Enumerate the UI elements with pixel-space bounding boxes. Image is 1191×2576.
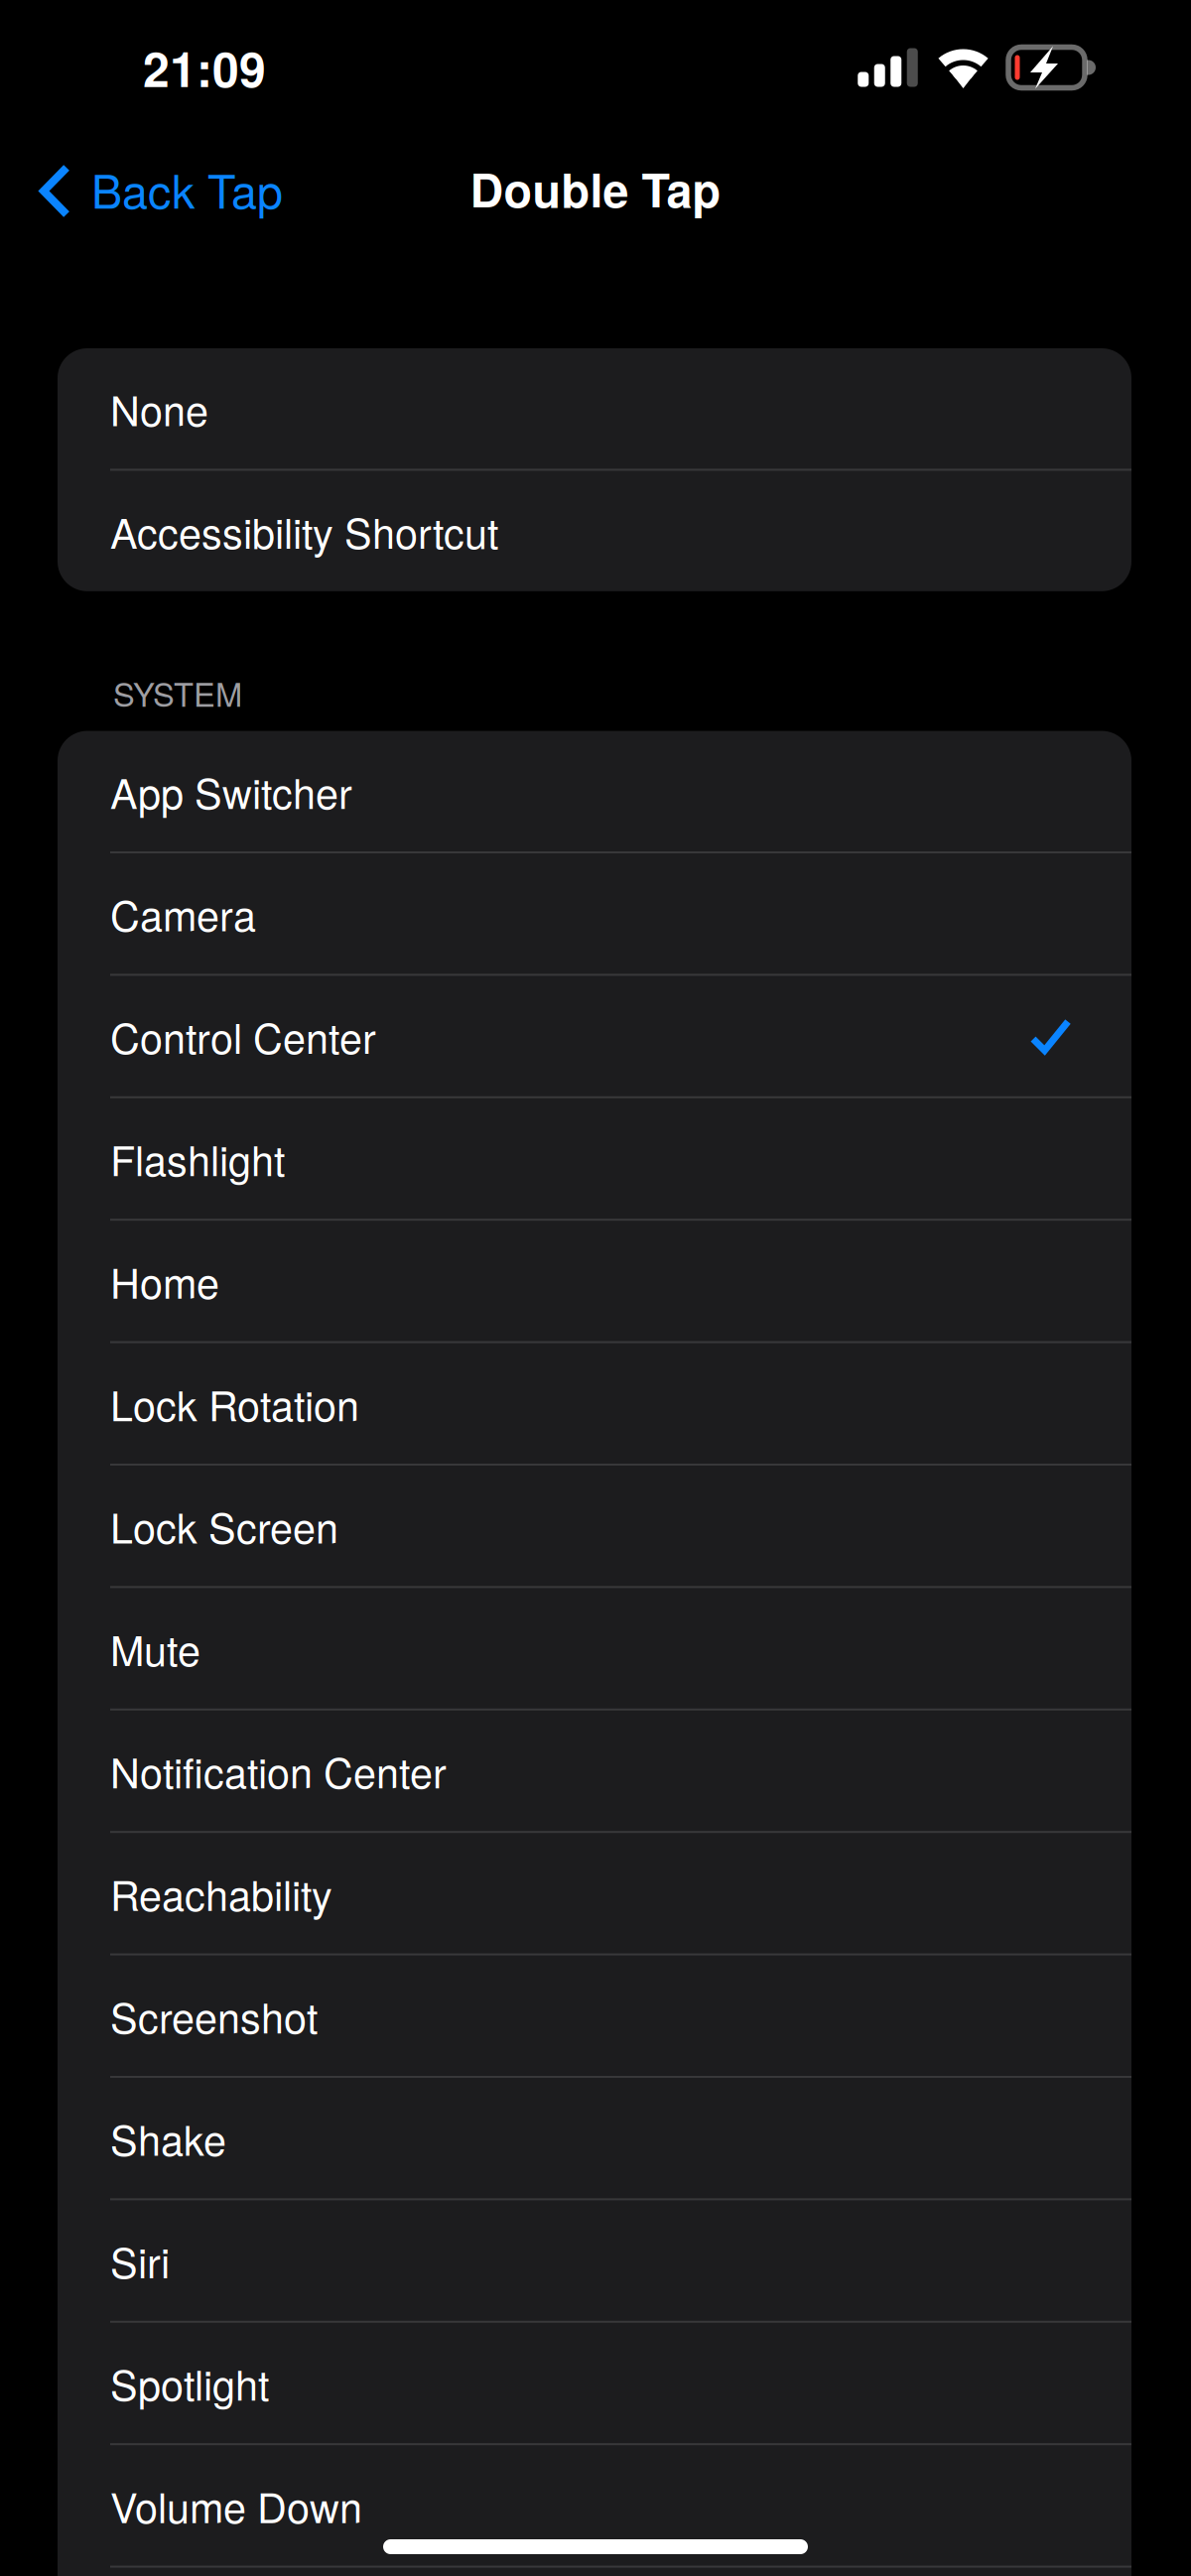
- staticText: SYSTEM: [113, 670, 242, 716]
- button[interactable]: Screenshot: [58, 1955, 1131, 2076]
- button[interactable]: Volume Up: [58, 2568, 1131, 2576]
- staticText: Shake: [110, 2109, 226, 2167]
- staticText: Double Tap: [470, 155, 721, 222]
- button[interactable]: Accessibility Shortcut: [58, 471, 1131, 591]
- staticText: Accessibility Shortcut: [110, 502, 498, 560]
- button[interactable]: Shake: [58, 2078, 1131, 2198]
- button[interactable]: Mute: [58, 1588, 1131, 1709]
- staticText: Spotlight: [110, 2354, 269, 2412]
- staticText: Siri: [110, 2231, 170, 2290]
- staticText: Screenshot: [110, 1986, 318, 2045]
- button[interactable]: Lock Screen: [58, 1466, 1131, 1586]
- button[interactable]: Camera: [58, 853, 1131, 974]
- staticText: Lock Screen: [110, 1496, 338, 1555]
- button[interactable]: Reachability: [58, 1833, 1131, 1953]
- button[interactable]: Flashlight: [58, 1098, 1131, 1219]
- button[interactable]: Control Center: [58, 976, 1131, 1096]
- staticText: Volume Down: [110, 2476, 362, 2535]
- staticText: Flashlight: [110, 1129, 285, 1188]
- button[interactable]: Spotlight: [58, 2323, 1131, 2443]
- button[interactable]: None: [58, 348, 1131, 469]
- staticText: Back Tap: [91, 155, 283, 222]
- staticText: Mute: [110, 1619, 200, 1678]
- staticText: Reachability: [110, 1864, 332, 1923]
- staticText: 21:09: [143, 33, 266, 102]
- staticText: Lock Rotation: [110, 1374, 359, 1433]
- button[interactable]: Lock Rotation: [58, 1343, 1131, 1464]
- button[interactable]: Volume Down: [58, 2445, 1131, 2566]
- staticText: None: [110, 379, 208, 438]
- staticText: App Switcher: [110, 762, 352, 821]
- staticText: Control Center: [110, 1007, 376, 1065]
- button[interactable]: Back Tap: [0, 142, 307, 236]
- button[interactable]: App Switcher: [58, 731, 1131, 851]
- button[interactable]: Notification Center: [58, 1711, 1131, 1831]
- staticText: Notification Center: [110, 1741, 447, 1800]
- button[interactable]: Siri: [58, 2200, 1131, 2321]
- staticText: Camera: [110, 884, 256, 943]
- button[interactable]: Home: [58, 1221, 1131, 1341]
- staticText: Home: [110, 1252, 219, 1310]
